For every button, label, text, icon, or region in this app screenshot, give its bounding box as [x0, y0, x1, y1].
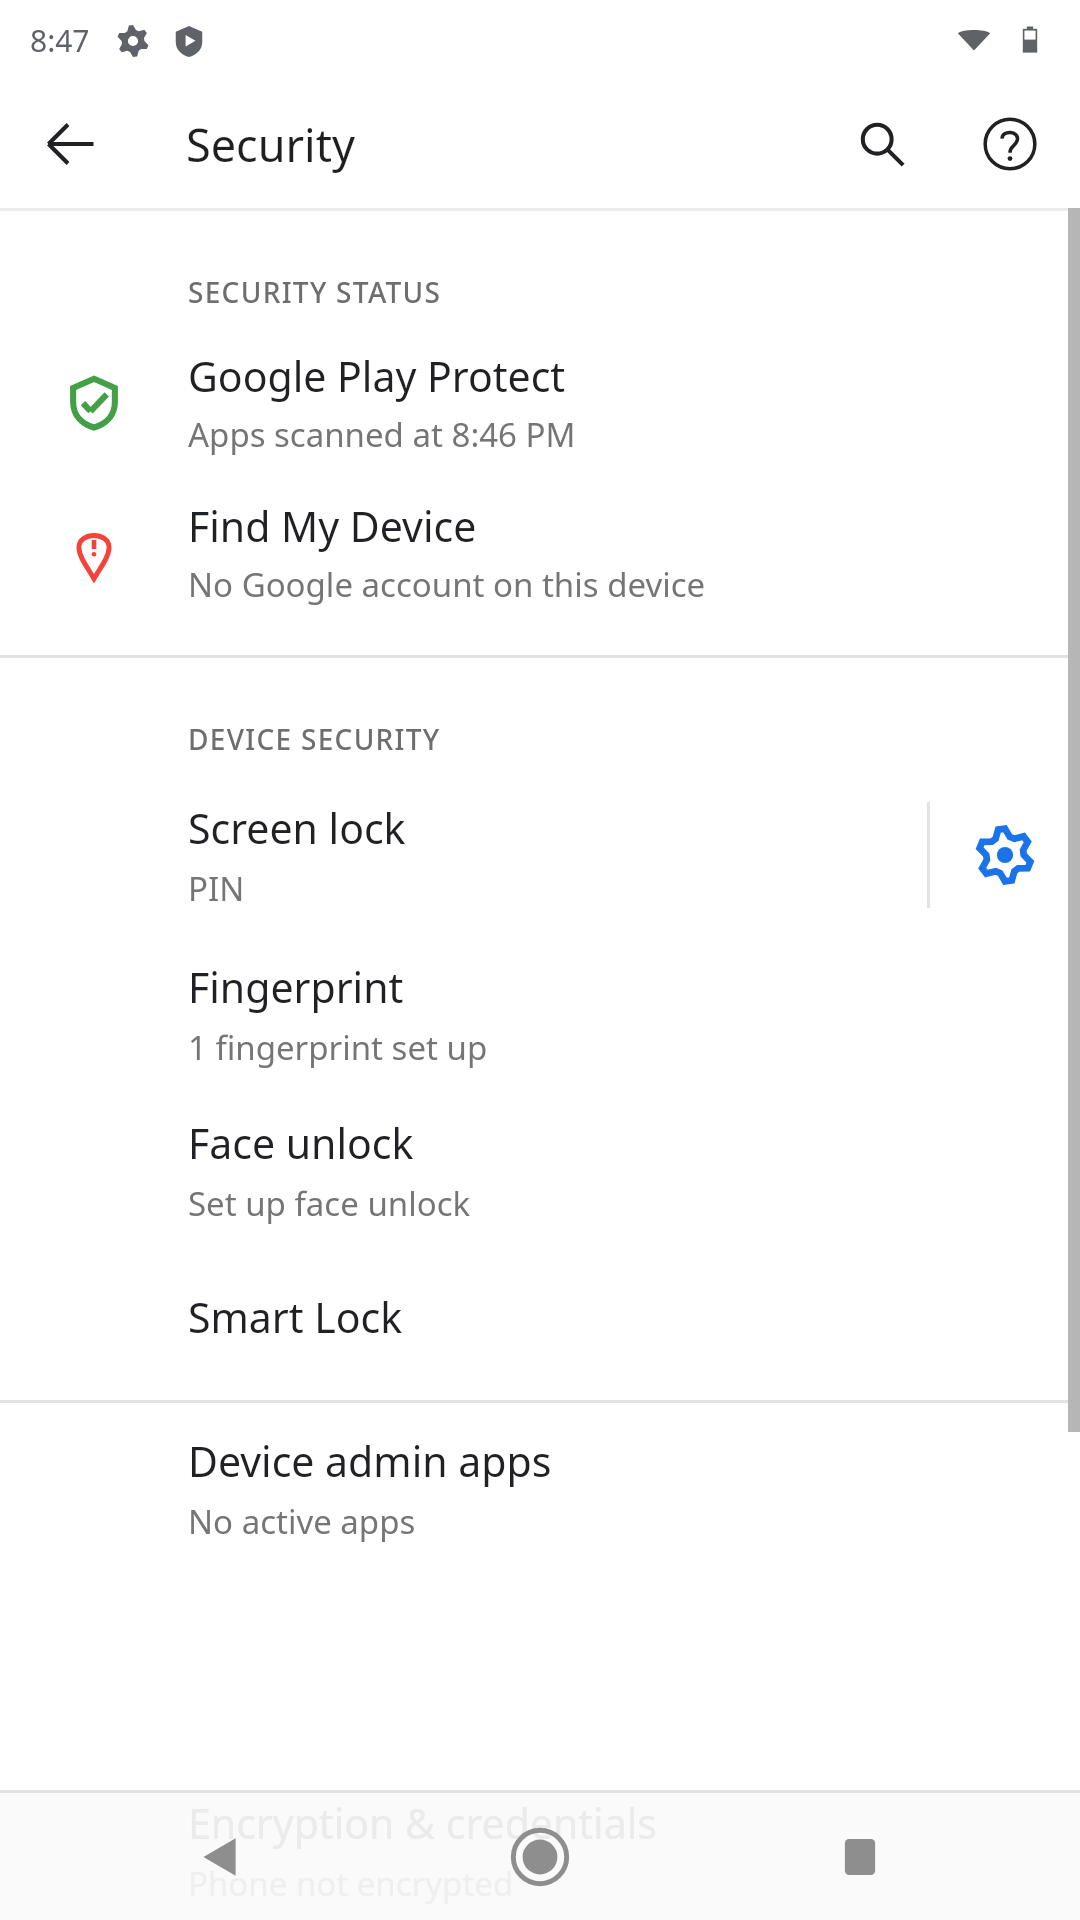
button[interactable]: Home	[480, 1797, 600, 1917]
button[interactable]: Search	[834, 96, 930, 192]
staticText: DEVICE SECURITY	[188, 720, 441, 758]
button[interactable]: Smart Lock	[0, 1248, 1080, 1386]
staticText: PIN	[188, 866, 245, 911]
button[interactable]: Screen lock	[0, 774, 927, 936]
staticText: Phone not encrypted	[188, 1861, 514, 1906]
button[interactable]: Back	[160, 1797, 280, 1917]
staticText: Screen lock	[188, 800, 406, 856]
button[interactable]: Face unlock	[0, 1092, 1080, 1248]
staticText: 1 fingerprint set up	[188, 1025, 488, 1070]
staticText: Device admin apps	[188, 1433, 552, 1489]
staticText: Apps scanned at 8:46 PM	[188, 412, 576, 457]
staticText: No Google account on this device	[188, 562, 706, 607]
staticText: 8:47	[30, 20, 90, 61]
staticText: Smart Lock	[188, 1289, 403, 1345]
button[interactable]: Google Play Protect	[0, 327, 1080, 477]
button[interactable]: Help	[962, 96, 1058, 192]
staticText: Find My Device	[188, 498, 477, 554]
button[interactable]: Find My Device	[0, 477, 1080, 627]
button[interactable]: Recent apps	[800, 1797, 920, 1917]
staticText: Fingerprint	[188, 959, 404, 1015]
staticText: Set up face unlock	[188, 1181, 471, 1226]
staticText: Encryption & credentials	[188, 1795, 657, 1851]
staticText: Security	[186, 114, 355, 175]
staticText: No active apps	[188, 1499, 416, 1544]
button[interactable]: Back	[22, 96, 118, 192]
staticText: SECURITY STATUS	[188, 273, 442, 311]
button[interactable]: Screen lock settings	[930, 774, 1080, 936]
staticText: Face unlock	[188, 1115, 414, 1171]
button[interactable]: Device admin apps	[0, 1403, 1080, 1573]
staticText: Google Play Protect	[188, 348, 566, 404]
button[interactable]: Fingerprint	[0, 936, 1080, 1092]
